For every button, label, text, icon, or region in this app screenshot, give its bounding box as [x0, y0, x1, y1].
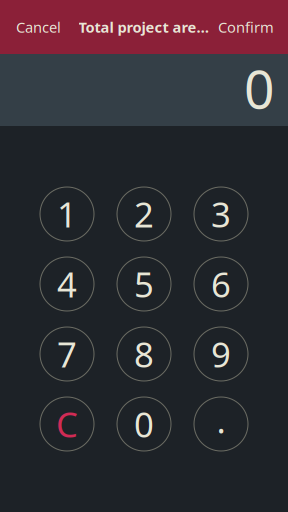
staticText: 2: [134, 191, 154, 237]
button[interactable]: 0: [117, 397, 171, 451]
staticText: C: [56, 401, 78, 447]
button[interactable]: Confirm: [218, 17, 274, 37]
staticText: 1: [57, 191, 77, 237]
button[interactable]: 4: [40, 257, 94, 311]
staticText: 8: [134, 331, 154, 377]
staticText: 7: [57, 331, 77, 377]
button[interactable]: 3: [194, 187, 248, 241]
staticText: 0: [244, 53, 275, 123]
button[interactable]: 7: [40, 327, 94, 381]
staticText: .: [216, 397, 225, 443]
button[interactable]: 1: [40, 187, 94, 241]
staticText: 3: [211, 191, 231, 237]
staticText: 9: [211, 331, 231, 377]
staticText: Cancel: [16, 17, 61, 37]
staticText: 4: [57, 261, 77, 307]
button[interactable]: C: [40, 397, 94, 451]
staticText: 5: [134, 261, 154, 307]
button[interactable]: 9: [194, 327, 248, 381]
staticText: 6: [211, 261, 231, 307]
staticText: Confirm: [218, 17, 274, 37]
staticText: Total project are…: [78, 17, 209, 37]
button[interactable]: 8: [117, 327, 171, 381]
button[interactable]: 2: [117, 187, 171, 241]
staticText: 0: [134, 401, 154, 447]
button[interactable]: Cancel: [16, 17, 61, 37]
button[interactable]: .: [194, 397, 248, 451]
button[interactable]: 5: [117, 257, 171, 311]
button[interactable]: 6: [194, 257, 248, 311]
